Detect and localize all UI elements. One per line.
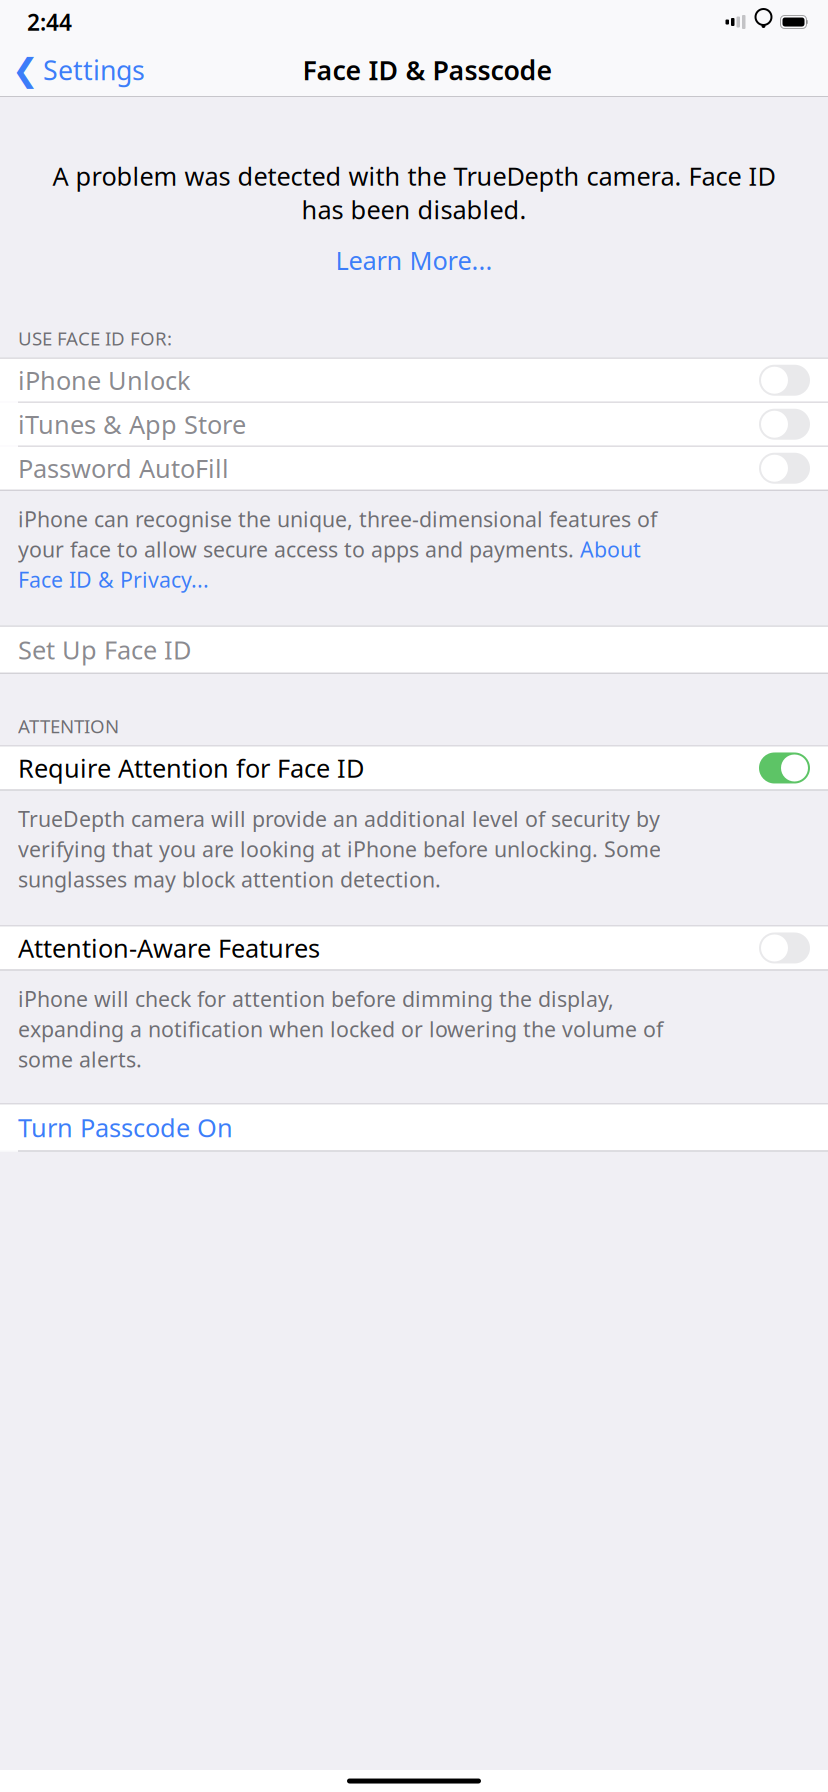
staticText: Require Attention for Face ID: [18, 751, 364, 785]
staticText: Face ID & Passcode: [302, 52, 552, 88]
button[interactable]: Learn More...: [325, 240, 502, 280]
staticText: About: [580, 535, 641, 563]
staticText: iTunes & App Store: [18, 407, 246, 441]
staticText: Turn Passcode On: [18, 1111, 233, 1144]
staticText: Attention-Aware Features: [18, 931, 320, 965]
button[interactable]: Turn Passcode On: [0, 1104, 828, 1150]
button[interactable]: Require Attention for Face ID: [0, 746, 828, 789]
staticText: Password AutoFill: [18, 451, 229, 485]
staticText: ATTENTION: [18, 714, 119, 738]
staticText: has been disabled.: [301, 193, 526, 226]
staticText: some alerts.: [18, 1045, 142, 1073]
staticText: Set Up Face ID: [18, 633, 191, 666]
staticText: iPhone Unlock: [18, 363, 191, 397]
staticText: Learn More...: [335, 243, 492, 277]
button[interactable]: ❮: [0, 44, 145, 96]
button[interactable]: Set Up Face ID: [0, 627, 828, 673]
staticText: TrueDepth camera will provide an additio…: [18, 804, 660, 833]
staticText: your face to allow secure access to apps…: [18, 535, 580, 563]
staticText: USE FACE ID FOR:: [18, 326, 172, 351]
staticText: expanding a notification when locked or …: [18, 1015, 663, 1043]
staticText: Settings: [43, 52, 145, 88]
button[interactable]: iTunes & App Store: [0, 403, 828, 446]
staticText: sunglasses may block attention detection…: [18, 865, 441, 893]
staticText: ❮: [12, 52, 39, 88]
staticText: iPhone will check for attention before d…: [18, 984, 614, 1013]
staticText: 2:44: [27, 7, 72, 37]
staticText: Face ID & Privacy...: [18, 565, 209, 594]
staticText: A problem was detected with the TrueDept…: [52, 159, 775, 193]
button[interactable]: Attention-Aware Features: [0, 926, 828, 969]
staticText: verifying that you are looking at iPhone…: [18, 835, 661, 863]
button[interactable]: iPhone Unlock: [0, 359, 828, 402]
staticText: iPhone can recognise the unique, three-d…: [18, 505, 657, 533]
button[interactable]: Password AutoFill: [0, 447, 828, 490]
